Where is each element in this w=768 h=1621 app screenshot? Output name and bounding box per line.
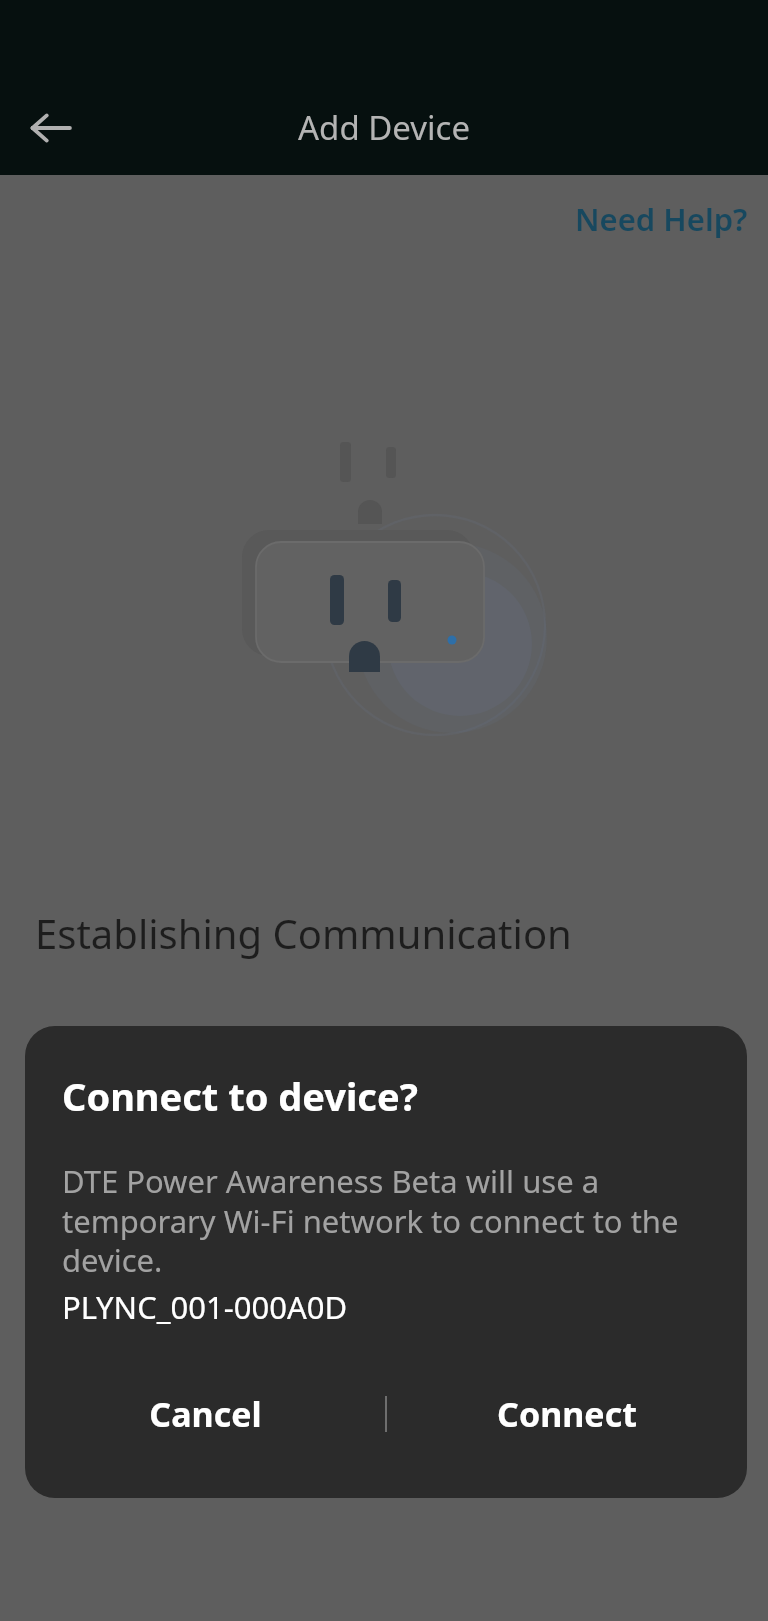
- staticText: Connect to device?: [62, 1070, 418, 1122]
- staticText: DTE Power Awareness Beta will use a temp…: [62, 1160, 715, 1281]
- staticText: Cancel: [149, 1391, 262, 1437]
- staticText: Establishing Communication: [35, 906, 572, 960]
- staticText: Add Device: [298, 105, 471, 150]
- staticText: Need Help?: [575, 198, 748, 240]
- button[interactable]: Connect: [387, 1372, 747, 1456]
- staticText: Connect: [497, 1391, 637, 1437]
- staticText: PLYNC_001-000A0D: [62, 1286, 348, 1328]
- button[interactable]: Back: [17, 94, 85, 162]
- button[interactable]: Cancel: [25, 1372, 385, 1456]
- button[interactable]: Need Help?: [565, 192, 758, 246]
